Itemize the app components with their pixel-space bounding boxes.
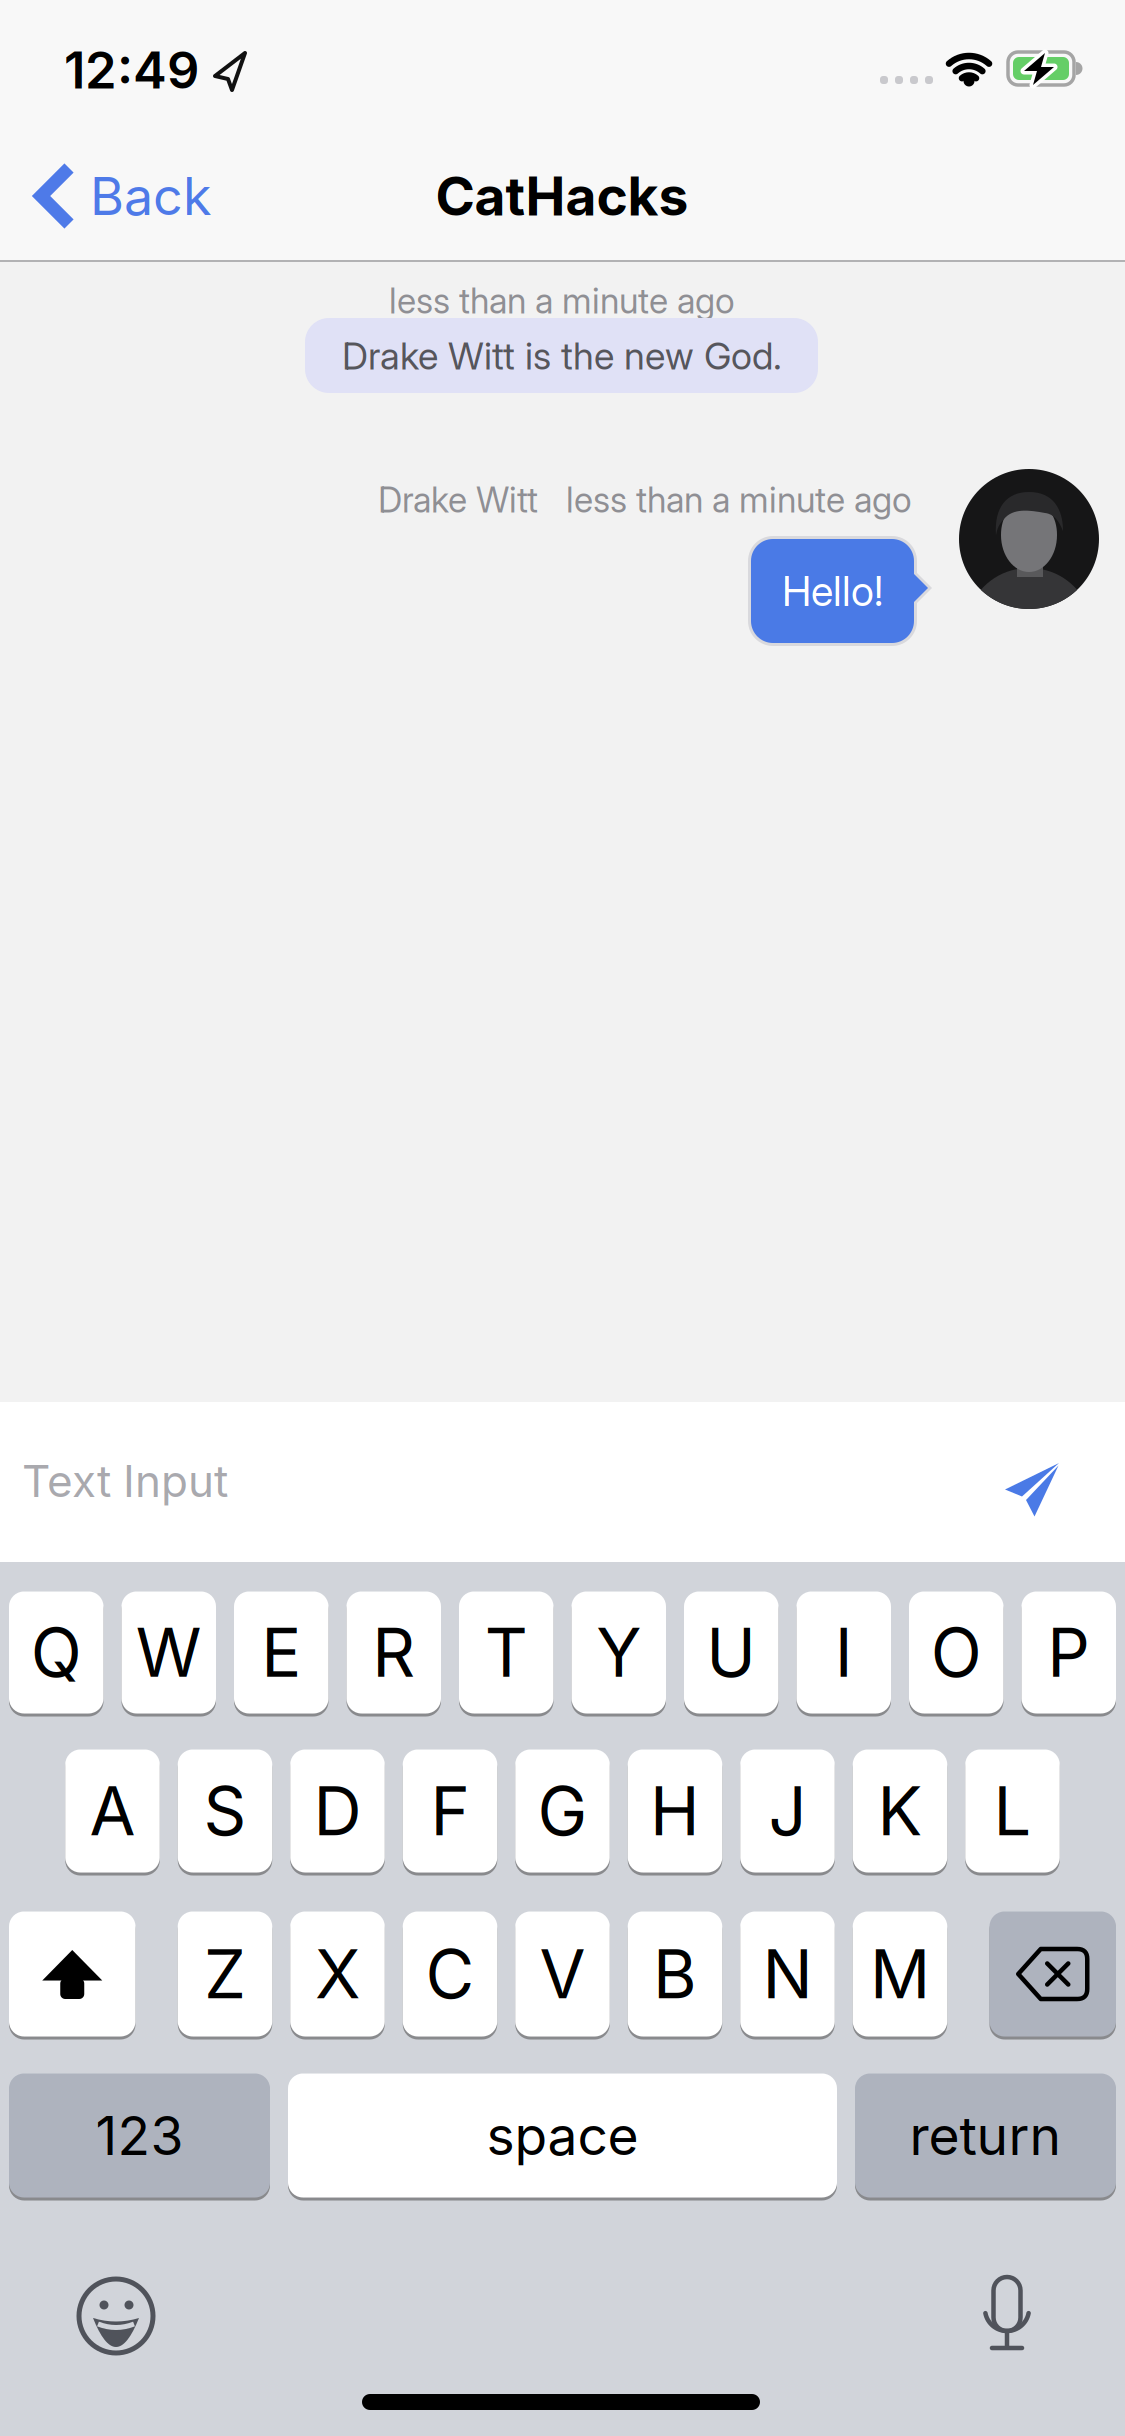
button[interactable]: U: [684, 1590, 778, 1715]
staticText: V: [539, 1935, 585, 2013]
button[interactable]: Y: [571, 1590, 666, 1715]
staticText: Y: [596, 1613, 641, 1692]
staticText: M: [870, 1935, 930, 2013]
staticText: F: [430, 1772, 469, 1850]
button[interactable]: Delete: [989, 1910, 1116, 2038]
staticText: 123: [95, 2104, 183, 2167]
button[interactable]: A: [65, 1748, 160, 1874]
staticText: D: [313, 1772, 361, 1850]
button[interactable]: C: [403, 1910, 497, 2038]
staticText: I: [835, 1613, 853, 1692]
button[interactable]: I: [796, 1590, 891, 1715]
staticText: Q: [31, 1613, 82, 1692]
staticText: E: [261, 1613, 301, 1692]
button[interactable]: Shift: [9, 1910, 135, 2038]
button[interactable]: K: [853, 1748, 947, 1874]
button[interactable]: Q: [9, 1590, 103, 1715]
button[interactable]: D: [290, 1748, 385, 1874]
button[interactable]: L: [965, 1748, 1060, 1874]
staticText: S: [203, 1772, 246, 1850]
button[interactable]: Dictation: [977, 2277, 1037, 2355]
button[interactable]: H: [628, 1748, 722, 1874]
staticText: Drake Witt: [378, 480, 538, 520]
button[interactable]: F: [403, 1748, 497, 1874]
button[interactable]: X: [290, 1910, 385, 2038]
staticText: CatHacks: [435, 164, 688, 227]
staticText: space: [486, 2104, 638, 2167]
button[interactable]: J: [740, 1748, 835, 1874]
staticText: K: [877, 1772, 922, 1850]
button[interactable]: N: [740, 1910, 835, 2038]
button[interactable]: V: [515, 1910, 610, 2038]
button[interactable]: B: [628, 1910, 722, 2038]
staticText: Back: [90, 165, 212, 227]
button[interactable]: P: [1021, 1590, 1116, 1715]
staticText: Drake Witt is the new God.: [342, 334, 782, 378]
button[interactable]: Z: [178, 1910, 272, 2038]
staticText: X: [315, 1935, 360, 2013]
button[interactable]: T: [459, 1590, 553, 1715]
button[interactable]: Emoji: [75, 2275, 157, 2357]
staticText: H: [650, 1772, 700, 1850]
staticText: O: [931, 1613, 982, 1692]
staticText: W: [136, 1613, 202, 1692]
staticText: G: [537, 1772, 587, 1850]
button[interactable]: E: [234, 1590, 328, 1715]
staticText: less than a minute ago: [389, 281, 735, 321]
staticText: B: [653, 1935, 697, 2013]
staticText: return: [909, 2104, 1061, 2167]
button[interactable]: W: [121, 1590, 216, 1715]
staticText: N: [762, 1935, 812, 2013]
staticText: Z: [204, 1935, 246, 2013]
staticText: Hello!: [782, 567, 883, 615]
button[interactable]: return: [855, 2072, 1116, 2199]
button[interactable]: M: [853, 1910, 947, 2038]
button[interactable]: space: [288, 2072, 837, 2199]
staticText: J: [768, 1772, 806, 1850]
staticText: less than a minute ago: [566, 480, 912, 520]
button[interactable]: G: [515, 1748, 610, 1874]
button[interactable]: O: [909, 1590, 1003, 1715]
staticText: L: [993, 1772, 1031, 1850]
staticText: R: [372, 1613, 415, 1692]
staticText: 12:49: [64, 40, 199, 100]
staticText: T: [485, 1613, 528, 1692]
button[interactable]: R: [346, 1590, 441, 1715]
button[interactable]: S: [178, 1748, 272, 1874]
button[interactable]: Send: [1004, 1462, 1062, 1520]
staticText: Text Input: [22, 1455, 228, 1507]
staticText: A: [89, 1772, 135, 1850]
button[interactable]: Text Input: [0, 1406, 960, 1556]
staticText: U: [706, 1613, 756, 1692]
button[interactable]: Back: [36, 165, 212, 227]
button[interactable]: 123: [9, 2072, 270, 2199]
staticText: C: [425, 1935, 474, 2013]
staticText: P: [1047, 1613, 1090, 1692]
